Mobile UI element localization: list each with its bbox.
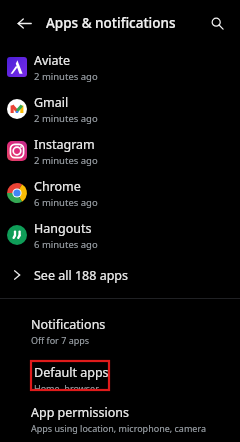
- staticText: Off for 7 apps: [31, 334, 90, 346]
- staticText: Home, browser: [34, 382, 99, 390]
- button[interactable]: Gmail: [0, 88, 240, 130]
- button[interactable]: Notifications: [0, 309, 240, 353]
- button[interactable]: Back: [8, 7, 40, 39]
- staticText: 6 minutes ago: [34, 238, 98, 251]
- button[interactable]: See all 188 apps: [0, 256, 240, 294]
- staticText: Instagram: [34, 136, 95, 153]
- button[interactable]: Aviate: [0, 46, 240, 88]
- button[interactable]: Search: [202, 8, 232, 38]
- staticText: 2 minutes ago: [34, 154, 98, 167]
- button[interactable]: Hangouts: [0, 214, 240, 256]
- staticText: 2 minutes ago: [34, 70, 98, 83]
- staticText: Aviate: [34, 52, 71, 69]
- staticText: Hangouts: [34, 220, 92, 237]
- staticText: Notifications: [31, 316, 106, 333]
- button[interactable]: Chrome: [0, 172, 240, 214]
- staticText: Apps & notifications: [46, 14, 176, 32]
- staticText: 6 minutes ago: [34, 196, 98, 209]
- staticText: Default apps: [34, 364, 109, 381]
- staticText: Chrome: [34, 178, 81, 195]
- staticText: See all 188 apps: [34, 267, 129, 284]
- staticText: App permissions: [31, 404, 129, 421]
- staticText: Apps using location, microphone, camera: [31, 422, 206, 434]
- button[interactable]: Instagram: [0, 130, 240, 172]
- button[interactable]: App permissions: [0, 397, 240, 441]
- button[interactable]: Default apps: [0, 353, 240, 397]
- staticText: Gmail: [34, 94, 69, 111]
- staticText: 2 minutes ago: [34, 112, 98, 125]
